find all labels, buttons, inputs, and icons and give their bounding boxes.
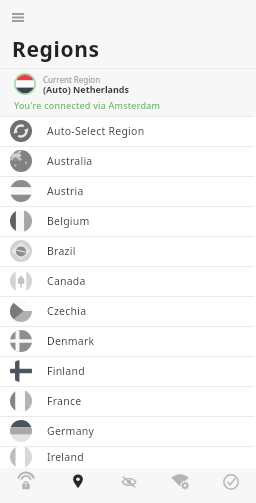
- button[interactable]: Status: [205, 468, 256, 503]
- button[interactable]: Brazil: [0, 236, 256, 266]
- staticText: Germany: [47, 424, 95, 438]
- button[interactable]: Germany: [0, 416, 256, 446]
- button[interactable]: Auto-Select Region: [0, 116, 256, 146]
- staticText: Ireland: [47, 450, 84, 464]
- staticText: Auto-Select Region: [47, 124, 145, 138]
- button[interactable]: Canada: [0, 266, 256, 296]
- staticText: You're connected via Amsterdam: [14, 99, 161, 111]
- staticText: Australia: [47, 154, 93, 168]
- button[interactable]: Finland: [0, 356, 256, 386]
- button[interactable]: Denmark: [0, 326, 256, 356]
- button[interactable]: Menu: [12, 13, 24, 22]
- staticText: Czechia: [47, 304, 87, 318]
- staticText: France: [47, 394, 82, 408]
- staticText: Current Region: [43, 74, 101, 85]
- button[interactable]: France: [0, 386, 256, 416]
- staticText: Belgium: [47, 214, 90, 228]
- button[interactable]: Regions: [52, 468, 103, 503]
- button[interactable]: VPN: [0, 468, 52, 503]
- button[interactable]: Privacy: [103, 468, 154, 503]
- staticText: Brazil: [47, 244, 76, 258]
- staticText: Austria: [47, 184, 84, 198]
- button[interactable]: Austria: [0, 176, 256, 206]
- button[interactable]: Wi-Fi settings: [154, 468, 205, 503]
- button[interactable]: Australia: [0, 146, 256, 176]
- staticText: Regions: [12, 35, 100, 64]
- staticText: Finland: [47, 364, 85, 378]
- button[interactable]: Belgium: [0, 206, 256, 236]
- staticText: Canada: [47, 274, 86, 288]
- staticText: (Auto) Netherlands: [43, 83, 130, 95]
- button[interactable]: Current Region: [0, 69, 256, 116]
- button[interactable]: Czechia: [0, 296, 256, 326]
- button[interactable]: Ireland: [0, 446, 256, 468]
- staticText: Denmark: [47, 334, 95, 348]
